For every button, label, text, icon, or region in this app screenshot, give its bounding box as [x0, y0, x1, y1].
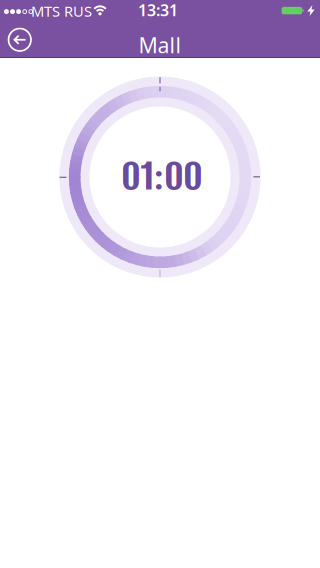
staticText: 13:31	[138, 0, 178, 21]
staticText: 01:00	[121, 146, 202, 204]
button[interactable]	[7, 27, 33, 53]
staticText: Mall	[138, 31, 181, 59]
staticText: MTS RUS	[31, 1, 92, 21]
